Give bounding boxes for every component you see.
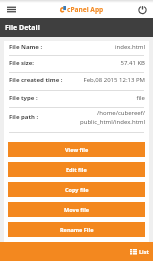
button[interactable]: Menu	[7, 5, 16, 14]
staticText: File created time :	[9, 76, 63, 84]
staticText: Feb,08 2015 12:13 PM	[83, 76, 145, 84]
staticText: View file	[65, 146, 89, 153]
staticText: /home/cubereef/ public_html/index.html	[79, 109, 145, 126]
staticText: Move file	[64, 206, 90, 213]
button[interactable]: View file	[8, 142, 145, 157]
button[interactable]: Edit file	[8, 162, 145, 177]
staticText: File Detail	[5, 23, 40, 33]
staticText: Copy file	[65, 186, 89, 193]
staticText: 57.41 KB	[120, 59, 145, 67]
staticText: File path :	[9, 113, 39, 121]
staticText: file	[136, 94, 145, 102]
staticText: cPanel App	[67, 5, 104, 14]
staticText: Edit file	[66, 166, 87, 173]
staticText: List	[139, 248, 149, 255]
button[interactable]: Power	[138, 5, 147, 14]
button[interactable]: Rename File	[8, 222, 145, 237]
staticText: File size:	[9, 59, 35, 67]
button[interactable]: List	[130, 248, 149, 255]
staticText: File Name :	[9, 43, 43, 51]
staticText: File type :	[9, 94, 38, 102]
staticText: Rename File	[60, 226, 94, 233]
button[interactable]: Copy file	[8, 182, 145, 197]
staticText: index.html	[114, 43, 145, 51]
button[interactable]: Move file	[8, 202, 145, 217]
